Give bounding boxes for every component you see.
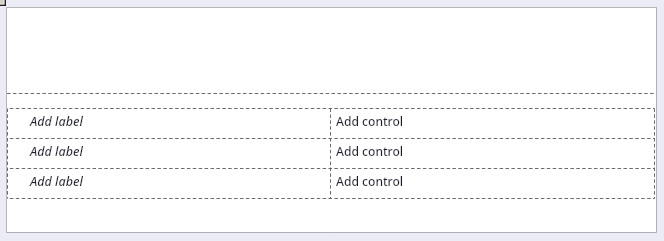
staticText: Add control bbox=[336, 173, 404, 189]
staticText: Add control bbox=[336, 113, 404, 129]
staticText: Add label bbox=[30, 173, 83, 190]
staticText: Add control bbox=[336, 143, 404, 159]
button[interactable]: Add control bbox=[331, 109, 655, 139]
staticText: Add label bbox=[30, 143, 83, 160]
button[interactable]: Add label bbox=[8, 109, 331, 139]
button[interactable]: Add label bbox=[8, 169, 331, 199]
button[interactable]: Add label bbox=[8, 139, 331, 169]
staticText: Add label bbox=[30, 113, 83, 130]
button[interactable]: Add control bbox=[331, 139, 655, 169]
button[interactable]: Form design surface bbox=[7, 8, 657, 233]
button[interactable]: Resize form bbox=[0, 0, 6, 6]
button[interactable]: Add control bbox=[331, 169, 655, 199]
